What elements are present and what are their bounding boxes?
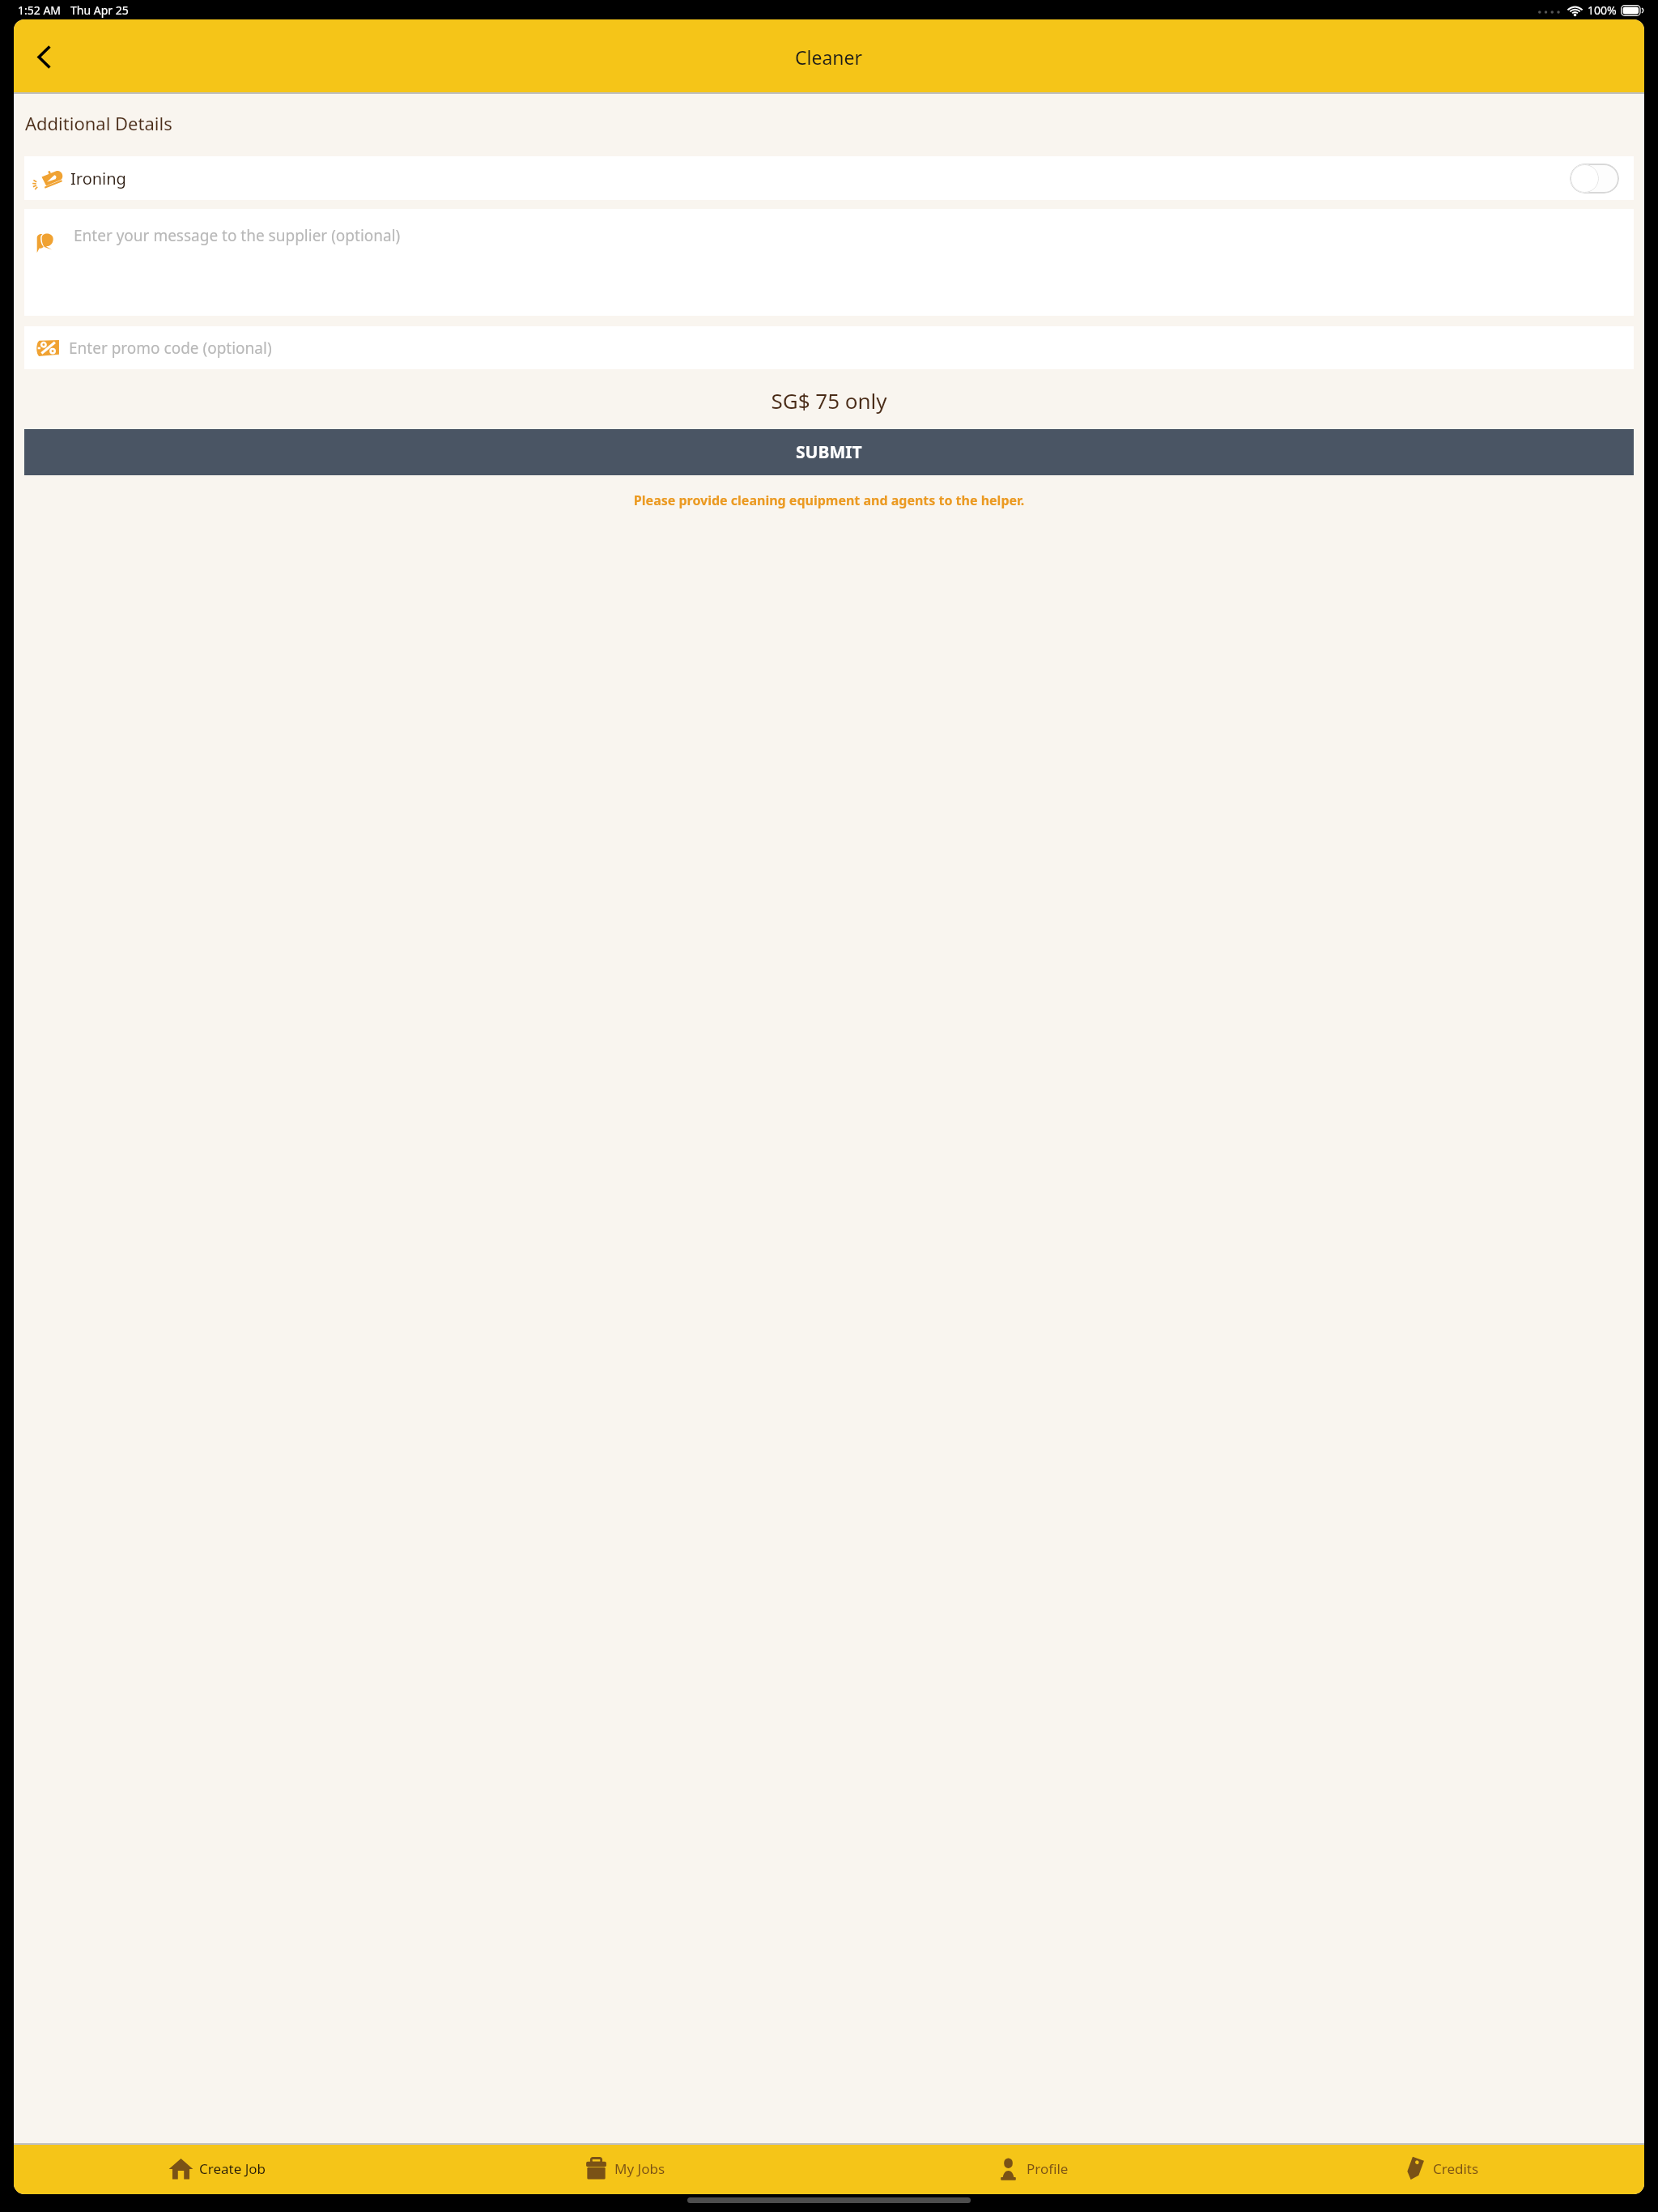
staticText: Enter promo code (optional) [69, 338, 272, 359]
staticText: SG$ 75 only [14, 386, 1644, 415]
staticText: Enter your message to the supplier (opti… [74, 225, 401, 246]
staticText: Credits [1433, 2159, 1479, 2178]
button[interactable]: Credits [1236, 2143, 1644, 2194]
staticText: 1:52 AM [18, 2, 62, 18]
staticText: SUBMIT [796, 440, 862, 464]
button[interactable]: My Jobs [421, 2143, 828, 2194]
button[interactable]: Back [22, 35, 66, 79]
staticText: Create Job [199, 2159, 266, 2178]
staticText: Additional Details [25, 111, 172, 135]
staticText: Ironing [70, 168, 126, 189]
button[interactable]: Ironing [24, 156, 1634, 200]
button[interactable]: Ironing toggle [1570, 164, 1619, 194]
button[interactable]: Enter your message to the supplier (opti… [24, 209, 1634, 316]
button[interactable]: Profile [828, 2143, 1236, 2194]
button[interactable]: Enter promo code (optional) [24, 326, 1634, 369]
staticText: Profile [1027, 2159, 1069, 2178]
button[interactable]: SUBMIT [24, 429, 1634, 475]
staticText: 100% [1588, 2, 1617, 18]
staticText: Please provide cleaning equipment and ag… [24, 491, 1634, 509]
staticText: Cleaner [795, 45, 863, 70]
staticText: Thu Apr 25 [70, 2, 129, 18]
staticText: My Jobs [614, 2159, 665, 2178]
button[interactable]: Create Job [14, 2143, 421, 2194]
